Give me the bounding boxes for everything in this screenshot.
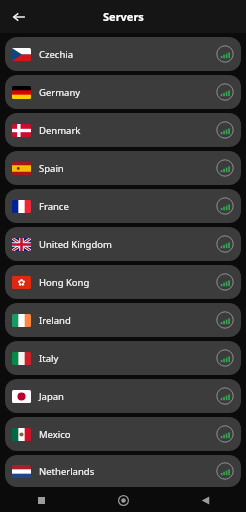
button[interactable]: Germany <box>5 75 241 109</box>
button[interactable]: Spain <box>5 151 241 185</box>
button[interactable]: Mexico <box>5 417 241 451</box>
staticText: Denmark <box>39 124 81 137</box>
staticText: Ireland <box>39 314 71 327</box>
button[interactable]: Back <box>194 489 216 511</box>
button[interactable]: Recents <box>30 489 52 511</box>
button[interactable]: Japan <box>5 379 241 413</box>
staticText: Germany <box>39 86 81 99</box>
button[interactable]: Czechia <box>5 37 241 71</box>
staticText: France <box>39 200 69 213</box>
button[interactable]: France <box>5 189 241 223</box>
staticText: Mexico <box>39 428 71 441</box>
button[interactable]: Netherlands <box>5 455 241 487</box>
staticText: Netherlands <box>39 465 95 478</box>
staticText: United Kingdom <box>39 238 112 251</box>
staticText: Japan <box>39 390 64 403</box>
staticText: Italy <box>39 352 59 365</box>
button[interactable]: Italy <box>5 341 241 375</box>
button[interactable]: United Kingdom <box>5 227 241 261</box>
button[interactable]: Home <box>112 489 134 511</box>
staticText: Czechia <box>39 48 74 61</box>
staticText: Servers <box>103 9 144 24</box>
button[interactable]: Ireland <box>5 303 241 337</box>
button[interactable]: Denmark <box>5 113 241 147</box>
button[interactable]: Back <box>6 4 32 30</box>
button[interactable]: Hong Kong <box>5 265 241 299</box>
staticText: Spain <box>39 162 64 175</box>
staticText: Hong Kong <box>39 276 90 289</box>
